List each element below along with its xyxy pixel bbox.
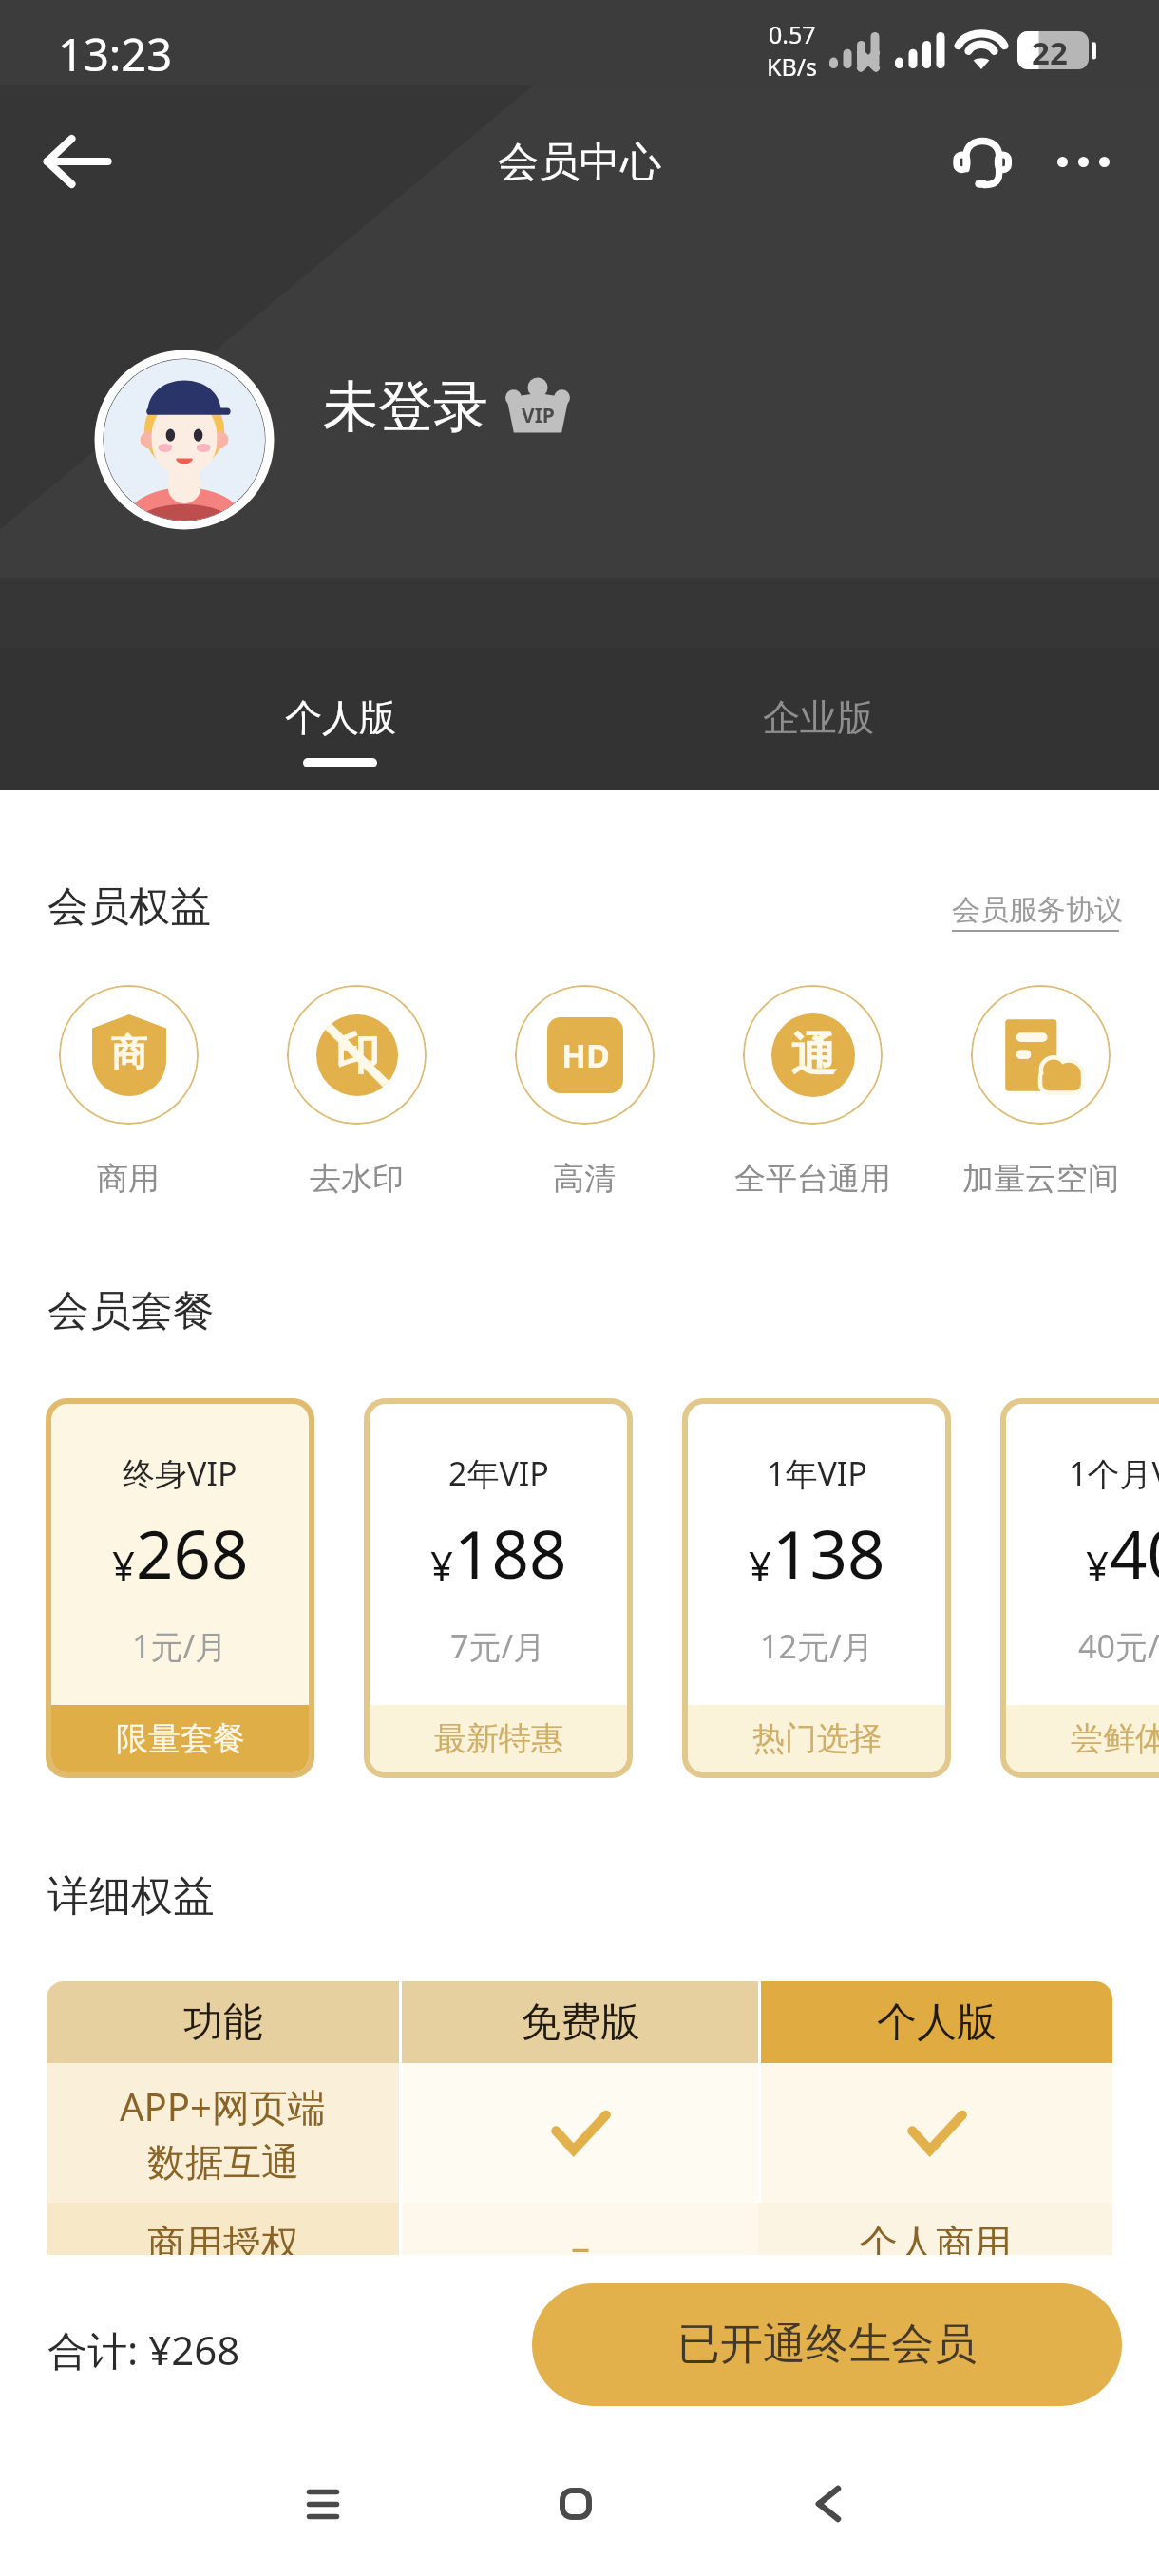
button[interactable]: 通 bbox=[698, 985, 926, 1203]
staticText: 已开通终生会员 bbox=[677, 2318, 977, 2372]
staticText: 1年VIP bbox=[767, 1451, 867, 1495]
button[interactable]: 加量云空间 bbox=[926, 985, 1154, 1203]
staticText: 高清 bbox=[553, 1159, 616, 1199]
staticText: 通 bbox=[790, 1027, 836, 1084]
staticText: ¥ bbox=[430, 1538, 454, 1592]
staticText: 尝鲜体验 bbox=[1071, 1718, 1159, 1759]
button[interactable]: Back bbox=[32, 117, 122, 206]
staticText: 终身VIP bbox=[123, 1451, 237, 1495]
button[interactable]: 个人版 bbox=[221, 636, 459, 790]
staticText: 加量云空间 bbox=[962, 1159, 1119, 1199]
button[interactable]: 1年VIP bbox=[682, 1398, 951, 1778]
button[interactable]: 商 bbox=[14, 985, 242, 1203]
button[interactable]: 终身VIP bbox=[46, 1398, 314, 1778]
staticText: 去水印 bbox=[310, 1159, 404, 1199]
staticText: 免费版 bbox=[521, 1998, 640, 2048]
staticText: 188 bbox=[454, 1508, 567, 1598]
staticText: 企业版 bbox=[763, 694, 874, 741]
button[interactable]: 企业版 bbox=[699, 636, 937, 790]
staticText: ¥ bbox=[1086, 1538, 1110, 1592]
staticText: 全平台通用 bbox=[734, 1159, 891, 1199]
button[interactable]: Home bbox=[500, 2442, 652, 2566]
staticText: 个人版 bbox=[285, 694, 396, 741]
staticText: 会员服务协议 bbox=[952, 892, 1123, 928]
staticText: 商用 bbox=[97, 1159, 160, 1199]
staticText: KB/s bbox=[767, 50, 818, 83]
staticText: APP+网页端 bbox=[120, 2080, 326, 2132]
staticText: 最新特惠 bbox=[434, 1718, 563, 1759]
staticText: 12元/月 bbox=[760, 1624, 874, 1668]
staticText: 合计: ¥268 bbox=[47, 2322, 240, 2377]
button[interactable]: 1个月VIP bbox=[1000, 1398, 1159, 1778]
staticText: 0.57 bbox=[769, 18, 816, 50]
staticText: 热门选择 bbox=[752, 1718, 882, 1759]
button[interactable]: 2年VIP bbox=[364, 1398, 633, 1778]
button[interactable]: 印 bbox=[242, 985, 470, 1203]
staticText: 个人商用 bbox=[860, 2220, 1012, 2267]
staticText: 1元/月 bbox=[132, 1624, 228, 1668]
button[interactable]: 已开通终生会员 bbox=[532, 2283, 1122, 2406]
button[interactable]: More options bbox=[1038, 117, 1128, 206]
staticText: 印 bbox=[335, 1027, 379, 1082]
staticText: 7元/月 bbox=[450, 1624, 546, 1668]
button[interactable]: Customer service bbox=[938, 117, 1027, 206]
staticText: 13:23 bbox=[58, 24, 173, 85]
staticText: 限量套餐 bbox=[116, 1718, 245, 1759]
staticText: 268 bbox=[136, 1508, 249, 1598]
staticText: ¥ bbox=[112, 1538, 136, 1592]
staticText: 40元/月 bbox=[1078, 1624, 1159, 1668]
staticText: 138 bbox=[772, 1508, 885, 1598]
staticText: 详细权益 bbox=[47, 1870, 215, 1923]
staticText: 会员中心 bbox=[498, 137, 661, 188]
staticText: 商 bbox=[111, 1030, 147, 1075]
staticText: 2年VIP bbox=[448, 1451, 549, 1495]
staticText: VIP bbox=[522, 402, 555, 429]
staticText: 数据互通 bbox=[147, 2138, 299, 2186]
button[interactable]: 会员服务协议 bbox=[952, 892, 1123, 930]
staticText: 功能 bbox=[183, 1998, 263, 2048]
staticText: 未登录 bbox=[323, 372, 488, 442]
staticText: 会员套餐 bbox=[47, 1285, 215, 1337]
button[interactable]: Back bbox=[752, 2442, 904, 2566]
staticText: 22 bbox=[1032, 31, 1068, 69]
button[interactable]: HD bbox=[470, 985, 698, 1203]
staticText: 1个月VIP bbox=[1069, 1451, 1159, 1495]
staticText: HD bbox=[561, 1033, 610, 1077]
staticText: 40 bbox=[1110, 1508, 1159, 1598]
staticText: ¥ bbox=[749, 1538, 772, 1592]
staticText: 个人版 bbox=[877, 1998, 997, 2048]
staticText: 商用授权 bbox=[147, 2220, 299, 2267]
staticText: – bbox=[571, 2220, 590, 2271]
staticText: 会员权益 bbox=[47, 881, 211, 933]
button[interactable]: Recent apps bbox=[247, 2442, 399, 2566]
